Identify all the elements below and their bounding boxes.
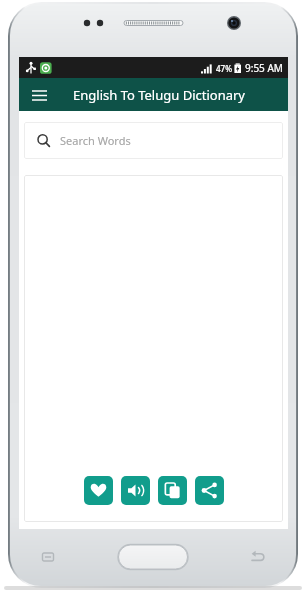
button[interactable]: Copy text bbox=[158, 476, 187, 505]
button[interactable]: Open navigation menu bbox=[27, 83, 51, 107]
staticText: 47% bbox=[216, 63, 232, 74]
button[interactable]: Share bbox=[195, 476, 224, 505]
staticText: 9:55 AM bbox=[245, 61, 283, 75]
button[interactable]: Pronounce word bbox=[121, 476, 150, 505]
button[interactable]: Add to favourites bbox=[84, 476, 113, 505]
staticText: Search Words bbox=[60, 133, 131, 148]
button[interactable]: Search Words bbox=[24, 122, 283, 159]
staticText: English To Telugu Dictionary bbox=[73, 86, 245, 104]
